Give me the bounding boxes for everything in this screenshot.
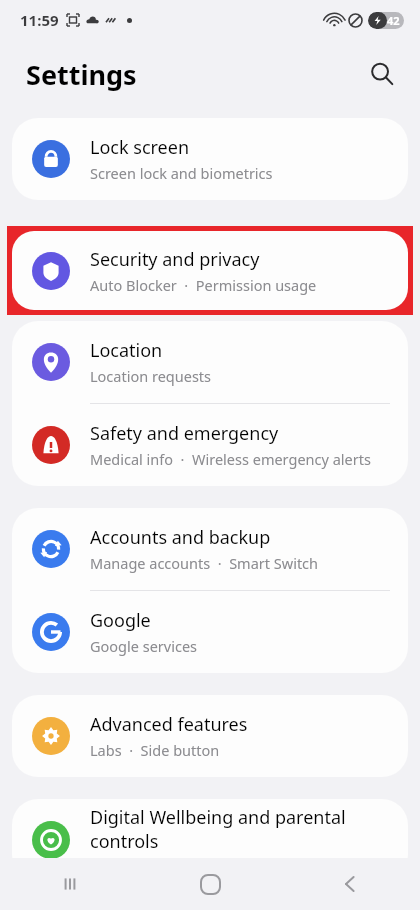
staticText: Lock screen xyxy=(90,135,190,160)
staticText: Labs · Side button xyxy=(90,740,220,760)
button[interactable]: Lock screen xyxy=(12,118,408,200)
button[interactable]: Search xyxy=(358,50,406,98)
staticText: Medical info · Wireless emergency alerts xyxy=(90,449,371,469)
staticText: Accounts and backup xyxy=(90,525,271,550)
button[interactable]: Safety and emergency xyxy=(12,404,408,486)
staticText: Screen lock and biometrics xyxy=(90,163,273,183)
button[interactable]: Home xyxy=(140,858,280,910)
staticText: 42 xyxy=(387,13,400,28)
button[interactable]: Accounts and backup xyxy=(12,508,408,590)
button[interactable]: Location xyxy=(12,321,408,403)
staticText: Security and privacy xyxy=(90,247,260,272)
staticText: Screen time · App timers xyxy=(90,856,264,876)
button[interactable]: Back xyxy=(280,858,420,910)
staticText: Location xyxy=(90,338,163,363)
button[interactable]: Digital Wellbeing and parental controls xyxy=(12,799,408,881)
button[interactable]: Advanced features xyxy=(12,695,408,777)
staticText: Google xyxy=(90,608,151,633)
staticText: Advanced features xyxy=(90,712,248,737)
staticText: Location requests xyxy=(90,366,212,386)
button[interactable]: Recents xyxy=(0,858,140,910)
button[interactable]: Google xyxy=(12,591,408,673)
staticText: Manage accounts · Smart Switch xyxy=(90,553,319,573)
staticText: Google services xyxy=(90,636,198,656)
staticText: 11:59 xyxy=(20,10,59,30)
button[interactable]: Security and privacy xyxy=(12,231,408,310)
staticText: Settings xyxy=(26,56,137,93)
staticText: Digital Wellbeing and parental controls xyxy=(90,805,392,853)
staticText: Safety and emergency xyxy=(90,421,279,446)
staticText: Auto Blocker · Permission usage xyxy=(90,275,317,295)
